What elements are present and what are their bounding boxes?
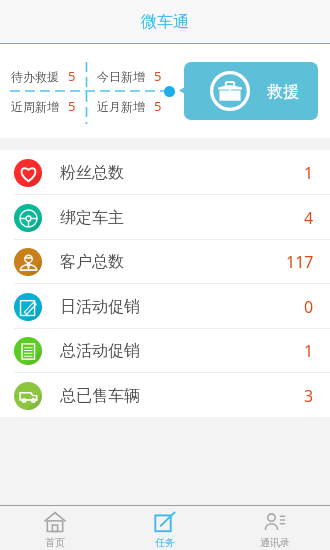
staticText: 救援 <box>267 82 299 102</box>
button[interactable]: 日活动促销 <box>0 284 330 329</box>
staticText: 客户总数 <box>60 252 124 272</box>
button[interactable]: 近月新增 <box>86 91 173 121</box>
staticText: 5 <box>68 67 76 85</box>
staticText: 待办救援 <box>11 69 59 84</box>
button[interactable]: 绑定车主 <box>0 195 330 240</box>
button[interactable]: 任务 <box>110 506 220 550</box>
staticText: 今日新增 <box>97 69 145 84</box>
button[interactable]: 客户总数 <box>0 239 330 284</box>
staticText: 117 <box>286 251 314 273</box>
staticText: 近月新增 <box>97 99 145 114</box>
staticText: 通讯录 <box>260 536 290 549</box>
button[interactable]: 近周新增 <box>0 91 86 121</box>
staticText: 绑定车主 <box>60 208 124 228</box>
staticText: 总已售车辆 <box>60 386 140 406</box>
button[interactable]: 总活动促销 <box>0 328 330 373</box>
staticText: 微车通 <box>141 12 189 32</box>
staticText: 5 <box>68 97 76 115</box>
staticText: 首页 <box>45 536 65 549</box>
staticText: 日活动促销 <box>60 297 140 317</box>
staticText: 任务 <box>155 536 175 549</box>
button[interactable]: 待办救援 <box>0 61 86 91</box>
button[interactable]: 总已售车辆 <box>0 373 330 418</box>
staticText: 4 <box>304 207 314 229</box>
staticText: 粉丝总数 <box>60 163 124 183</box>
staticText: 1 <box>304 340 314 362</box>
button[interactable]: 通讯录 <box>220 506 330 550</box>
staticText: 近周新增 <box>11 99 59 114</box>
staticText: 0 <box>304 296 314 318</box>
button[interactable]: 救援 <box>184 62 318 120</box>
staticText: 3 <box>304 385 314 407</box>
staticText: 5 <box>154 97 162 115</box>
staticText: 总活动促销 <box>60 341 140 361</box>
button[interactable]: 粉丝总数 <box>0 150 330 195</box>
staticText: 5 <box>154 67 162 85</box>
button[interactable]: 今日新增 <box>86 61 173 91</box>
button[interactable]: 首页 <box>0 506 110 550</box>
staticText: 1 <box>304 162 314 184</box>
